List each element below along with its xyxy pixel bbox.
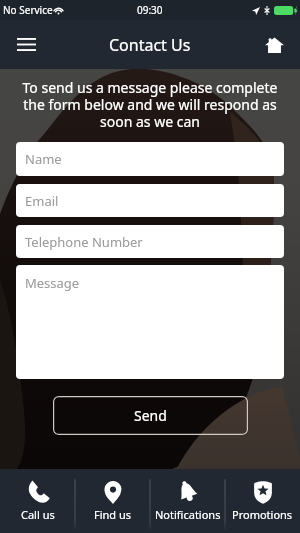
staticText: Send (134, 406, 167, 425)
staticText: Notifications (155, 507, 221, 522)
staticText: Find us (94, 507, 132, 522)
button[interactable]: Send (53, 396, 248, 435)
button[interactable]: Email (16, 184, 284, 217)
button[interactable]: Notifications (150, 469, 225, 533)
staticText: Name (25, 150, 62, 168)
staticText: Message (25, 274, 80, 292)
staticText: Call us (21, 507, 55, 522)
button[interactable]: Promotions (225, 469, 300, 533)
staticText: Promotions (232, 507, 293, 522)
button[interactable]: Message (16, 265, 284, 379)
button[interactable]: Home (248, 20, 300, 69)
button[interactable]: Name (16, 142, 284, 176)
button[interactable]: Find us (75, 469, 150, 533)
staticText: Telephone Number (25, 233, 143, 251)
button[interactable]: Open navigation menu (0, 20, 52, 69)
button[interactable]: Call us (0, 469, 75, 533)
staticText: 09:30 (137, 3, 163, 17)
staticText: No Service (3, 3, 53, 17)
staticText: Email (25, 192, 59, 210)
staticText: To send us a message please complete the… (12, 78, 288, 131)
staticText: Contact Us (109, 34, 191, 56)
button[interactable]: Telephone Number (16, 225, 284, 258)
